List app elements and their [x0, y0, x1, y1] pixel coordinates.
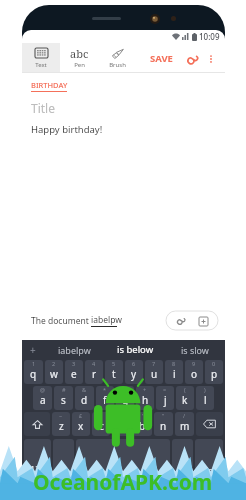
button[interactable]: Attach file	[173, 313, 189, 329]
staticText: a	[40, 393, 46, 407]
staticText: y	[131, 367, 137, 381]
staticText: i	[173, 367, 176, 381]
staticText: n	[160, 419, 167, 433]
staticText: r	[92, 367, 97, 381]
staticText: Title	[31, 100, 55, 116]
staticText: 7	[152, 360, 156, 367]
staticText: Text	[35, 61, 47, 69]
staticText: &	[82, 386, 87, 393]
button[interactable]: is slow	[165, 340, 225, 359]
staticText: o	[191, 367, 198, 381]
button[interactable]: Attach	[183, 50, 201, 68]
staticText: 10:09	[199, 31, 220, 42]
button[interactable]: 3	[65, 360, 83, 384]
staticText: 3	[72, 360, 76, 367]
button[interactable]: -	[116, 386, 134, 410]
button[interactable]: More options	[203, 51, 219, 67]
button[interactable]: •	[112, 412, 131, 436]
button[interactable]: 0	[205, 360, 223, 384]
button[interactable]: *	[96, 386, 114, 410]
button[interactable]	[76, 439, 170, 498]
staticText: -	[124, 386, 126, 393]
button[interactable]: 6	[125, 360, 143, 384]
staticText: f	[103, 393, 107, 407]
button[interactable]: @	[33, 386, 52, 410]
button[interactable]: #	[54, 386, 73, 410]
button[interactable]: 9	[185, 360, 203, 384]
button[interactable]: &	[75, 386, 94, 410]
staticText: is slow	[181, 344, 209, 356]
button[interactable]: ¥	[92, 412, 110, 436]
staticText: z	[59, 419, 64, 433]
staticText: SAVE	[150, 52, 173, 65]
staticText: is below	[117, 343, 154, 356]
button[interactable]: Attach file	[166, 311, 218, 330]
staticText: .	[181, 463, 184, 475]
button[interactable]: "	[154, 412, 173, 436]
button[interactable]: 8	[165, 360, 183, 384]
staticText: iabelpw	[91, 314, 122, 326]
button[interactable]: £	[72, 412, 90, 436]
button[interactable]: abc	[60, 43, 98, 73]
staticText: BIRTHDAY	[31, 80, 68, 90]
staticText: x	[78, 419, 84, 433]
button[interactable]: Brush	[98, 43, 136, 73]
staticText: d	[81, 393, 88, 407]
button[interactable]: ~	[52, 412, 70, 436]
button[interactable]: More suggestions	[22, 340, 44, 359]
button[interactable]: Shift	[24, 412, 50, 436]
staticText: u	[151, 367, 158, 381]
staticText: 5	[112, 360, 116, 367]
button[interactable]: iabelpw	[44, 340, 105, 359]
staticText: Pen	[74, 61, 85, 69]
staticText: k	[182, 393, 188, 407]
button[interactable]: =	[156, 386, 174, 410]
staticText: iabelpw	[58, 344, 91, 356]
button[interactable]: Insert	[195, 313, 211, 329]
button[interactable]: Backspace	[196, 412, 223, 436]
staticText: j	[164, 393, 167, 407]
button[interactable]: SAVE	[146, 48, 177, 69]
button[interactable]: 1	[24, 360, 43, 384]
button[interactable]	[195, 439, 223, 498]
button[interactable]: is below	[105, 340, 165, 359]
button[interactable]: 2	[45, 360, 63, 384]
button[interactable]: /	[175, 412, 194, 436]
staticText: +	[143, 386, 147, 393]
staticText: )	[204, 386, 206, 393]
staticText: Brush	[109, 61, 126, 69]
staticText: ~	[59, 412, 63, 419]
staticText: £	[79, 412, 83, 419]
staticText: 1	[32, 360, 36, 367]
button[interactable]: .	[172, 439, 193, 498]
staticText: t	[112, 367, 116, 381]
staticText: abc	[70, 46, 89, 60]
staticText: @	[40, 386, 45, 393]
staticText: l	[204, 393, 207, 407]
staticText: s	[61, 393, 66, 407]
button[interactable]: 123	[24, 439, 51, 498]
staticText: b	[139, 419, 146, 433]
button[interactable]: +	[136, 386, 154, 410]
staticText: q	[30, 367, 37, 381]
staticText: 123	[30, 463, 46, 475]
staticText: OceanofAPK.com	[33, 468, 213, 497]
button[interactable]: Text	[22, 43, 60, 73]
button[interactable]: 4	[85, 360, 103, 384]
staticText: c	[99, 419, 104, 433]
staticText: *	[103, 386, 107, 393]
button[interactable]: 7	[145, 360, 163, 384]
staticText: "	[162, 412, 165, 419]
staticText: 6	[132, 360, 136, 367]
staticText: 4	[92, 360, 96, 367]
button[interactable]: )	[196, 386, 214, 410]
button[interactable]	[53, 439, 74, 498]
staticText: '	[142, 412, 144, 419]
button[interactable]: 5	[105, 360, 123, 384]
staticText: 9	[192, 360, 196, 367]
staticText: =	[163, 386, 167, 393]
staticText: #	[62, 386, 66, 393]
button[interactable]: (	[176, 386, 194, 410]
staticText: w	[50, 367, 58, 381]
button[interactable]: '	[133, 412, 152, 436]
